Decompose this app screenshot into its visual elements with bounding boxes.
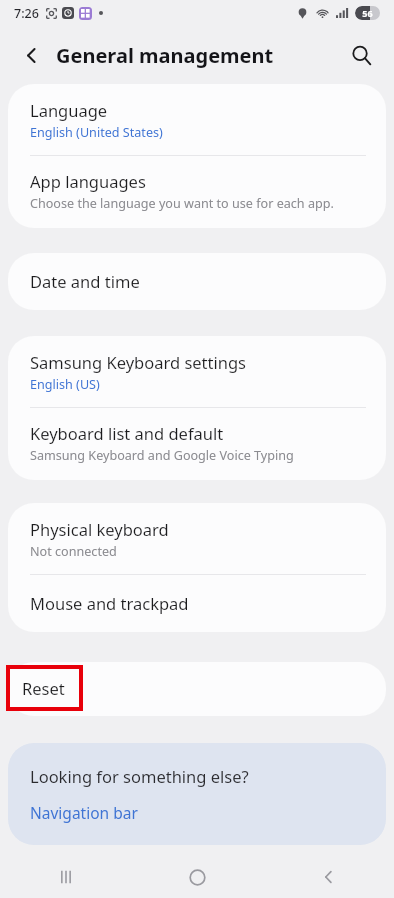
button[interactable]: Date and time	[8, 253, 386, 310]
staticText: 7:26	[14, 5, 39, 22]
staticText: Physical keyboard	[30, 518, 169, 540]
button[interactable]: App languages	[8, 156, 386, 228]
button[interactable]: Samsung Keyboard settings	[8, 336, 386, 407]
button[interactable]	[8, 662, 386, 716]
staticText: General management	[56, 42, 274, 69]
button[interactable]: Home	[132, 856, 263, 898]
staticText: Not connected	[30, 543, 117, 560]
staticText: Date and time	[30, 270, 140, 292]
button[interactable]: Reset	[6, 665, 83, 711]
staticText: App languages	[30, 170, 146, 192]
button[interactable]: Physical keyboard	[8, 503, 386, 574]
staticText: Looking for something else?	[30, 765, 249, 787]
staticText: Samsung Keyboard and Google Voice Typing	[30, 447, 294, 464]
staticText: English (US)	[30, 376, 100, 393]
staticText: 56	[362, 7, 373, 19]
staticText: Choose the language you want to use for …	[30, 195, 334, 212]
staticText: Language	[30, 99, 108, 121]
staticText: Keyboard list and default	[30, 422, 224, 444]
staticText: English (United States)	[30, 124, 163, 141]
button[interactable]: Search	[340, 34, 382, 76]
button[interactable]: Back	[10, 34, 52, 76]
button[interactable]: Keyboard list and default	[8, 408, 386, 480]
button[interactable]: Looking for something else?	[8, 743, 386, 845]
staticText: Reset	[22, 677, 65, 699]
button[interactable]: Back	[263, 856, 394, 898]
staticText: Navigation bar	[30, 802, 138, 823]
staticText: Samsung Keyboard settings	[30, 351, 247, 373]
button[interactable]: Recents	[0, 856, 132, 898]
button[interactable]: Mouse and trackpad	[8, 575, 386, 632]
staticText: Mouse and trackpad	[30, 592, 189, 614]
button[interactable]: Language	[8, 84, 386, 155]
